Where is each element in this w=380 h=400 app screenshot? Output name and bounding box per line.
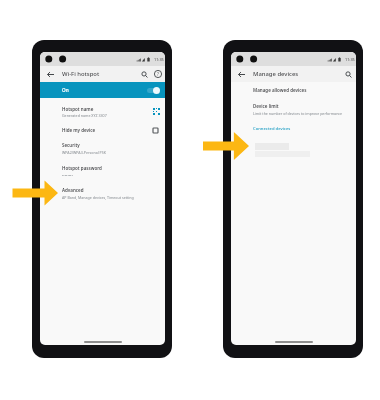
button[interactable]: Search [341, 67, 355, 81]
button[interactable]: Back [234, 67, 248, 81]
button[interactable]: Search [137, 67, 151, 81]
staticText: Limit the number of devices to improve p… [253, 111, 343, 116]
button[interactable]: Security [62, 142, 80, 148]
staticText: Manage devices [253, 70, 299, 78]
staticText: Advanced [62, 187, 84, 193]
button[interactable]: On [40, 82, 165, 98]
staticText: Security [62, 142, 80, 148]
button[interactable]: Connected devices [253, 126, 291, 132]
button[interactable]: Hotspot name [62, 106, 94, 112]
button[interactable]: Device limit [253, 103, 279, 109]
button[interactable]: Hide my device checkbox [153, 128, 158, 133]
staticText: ? [157, 71, 159, 77]
staticText: Hotspot password [62, 165, 102, 171]
staticText: On [62, 87, 69, 93]
staticText: 11:35 [154, 57, 164, 62]
staticText: Connected devices [253, 126, 291, 132]
button[interactable]: Back [43, 67, 57, 81]
button[interactable]: Help [151, 67, 165, 81]
staticText: Wi-Fi hotspot [62, 70, 100, 78]
staticText: WPA2/WPA3-Personal PSK [62, 150, 106, 155]
button[interactable]: Manage allowed devices [253, 87, 307, 93]
staticText: Device limit [253, 103, 279, 109]
staticText: 11:35 [345, 57, 355, 62]
button[interactable]: Show QR code [153, 108, 160, 115]
staticText: AP Band, Manage devices, Timeout setting [62, 195, 134, 200]
button[interactable]: Hotspot password [62, 165, 102, 171]
staticText: •••••••• [62, 173, 73, 178]
staticText: Generated name XYZ 3307 [62, 113, 107, 118]
staticText: Hotspot name [62, 106, 94, 112]
staticText: Hide my device [62, 127, 96, 133]
staticText: Manage allowed devices [253, 87, 307, 93]
button[interactable]: Advanced [62, 187, 84, 193]
button[interactable]: Hide my device [62, 127, 96, 133]
